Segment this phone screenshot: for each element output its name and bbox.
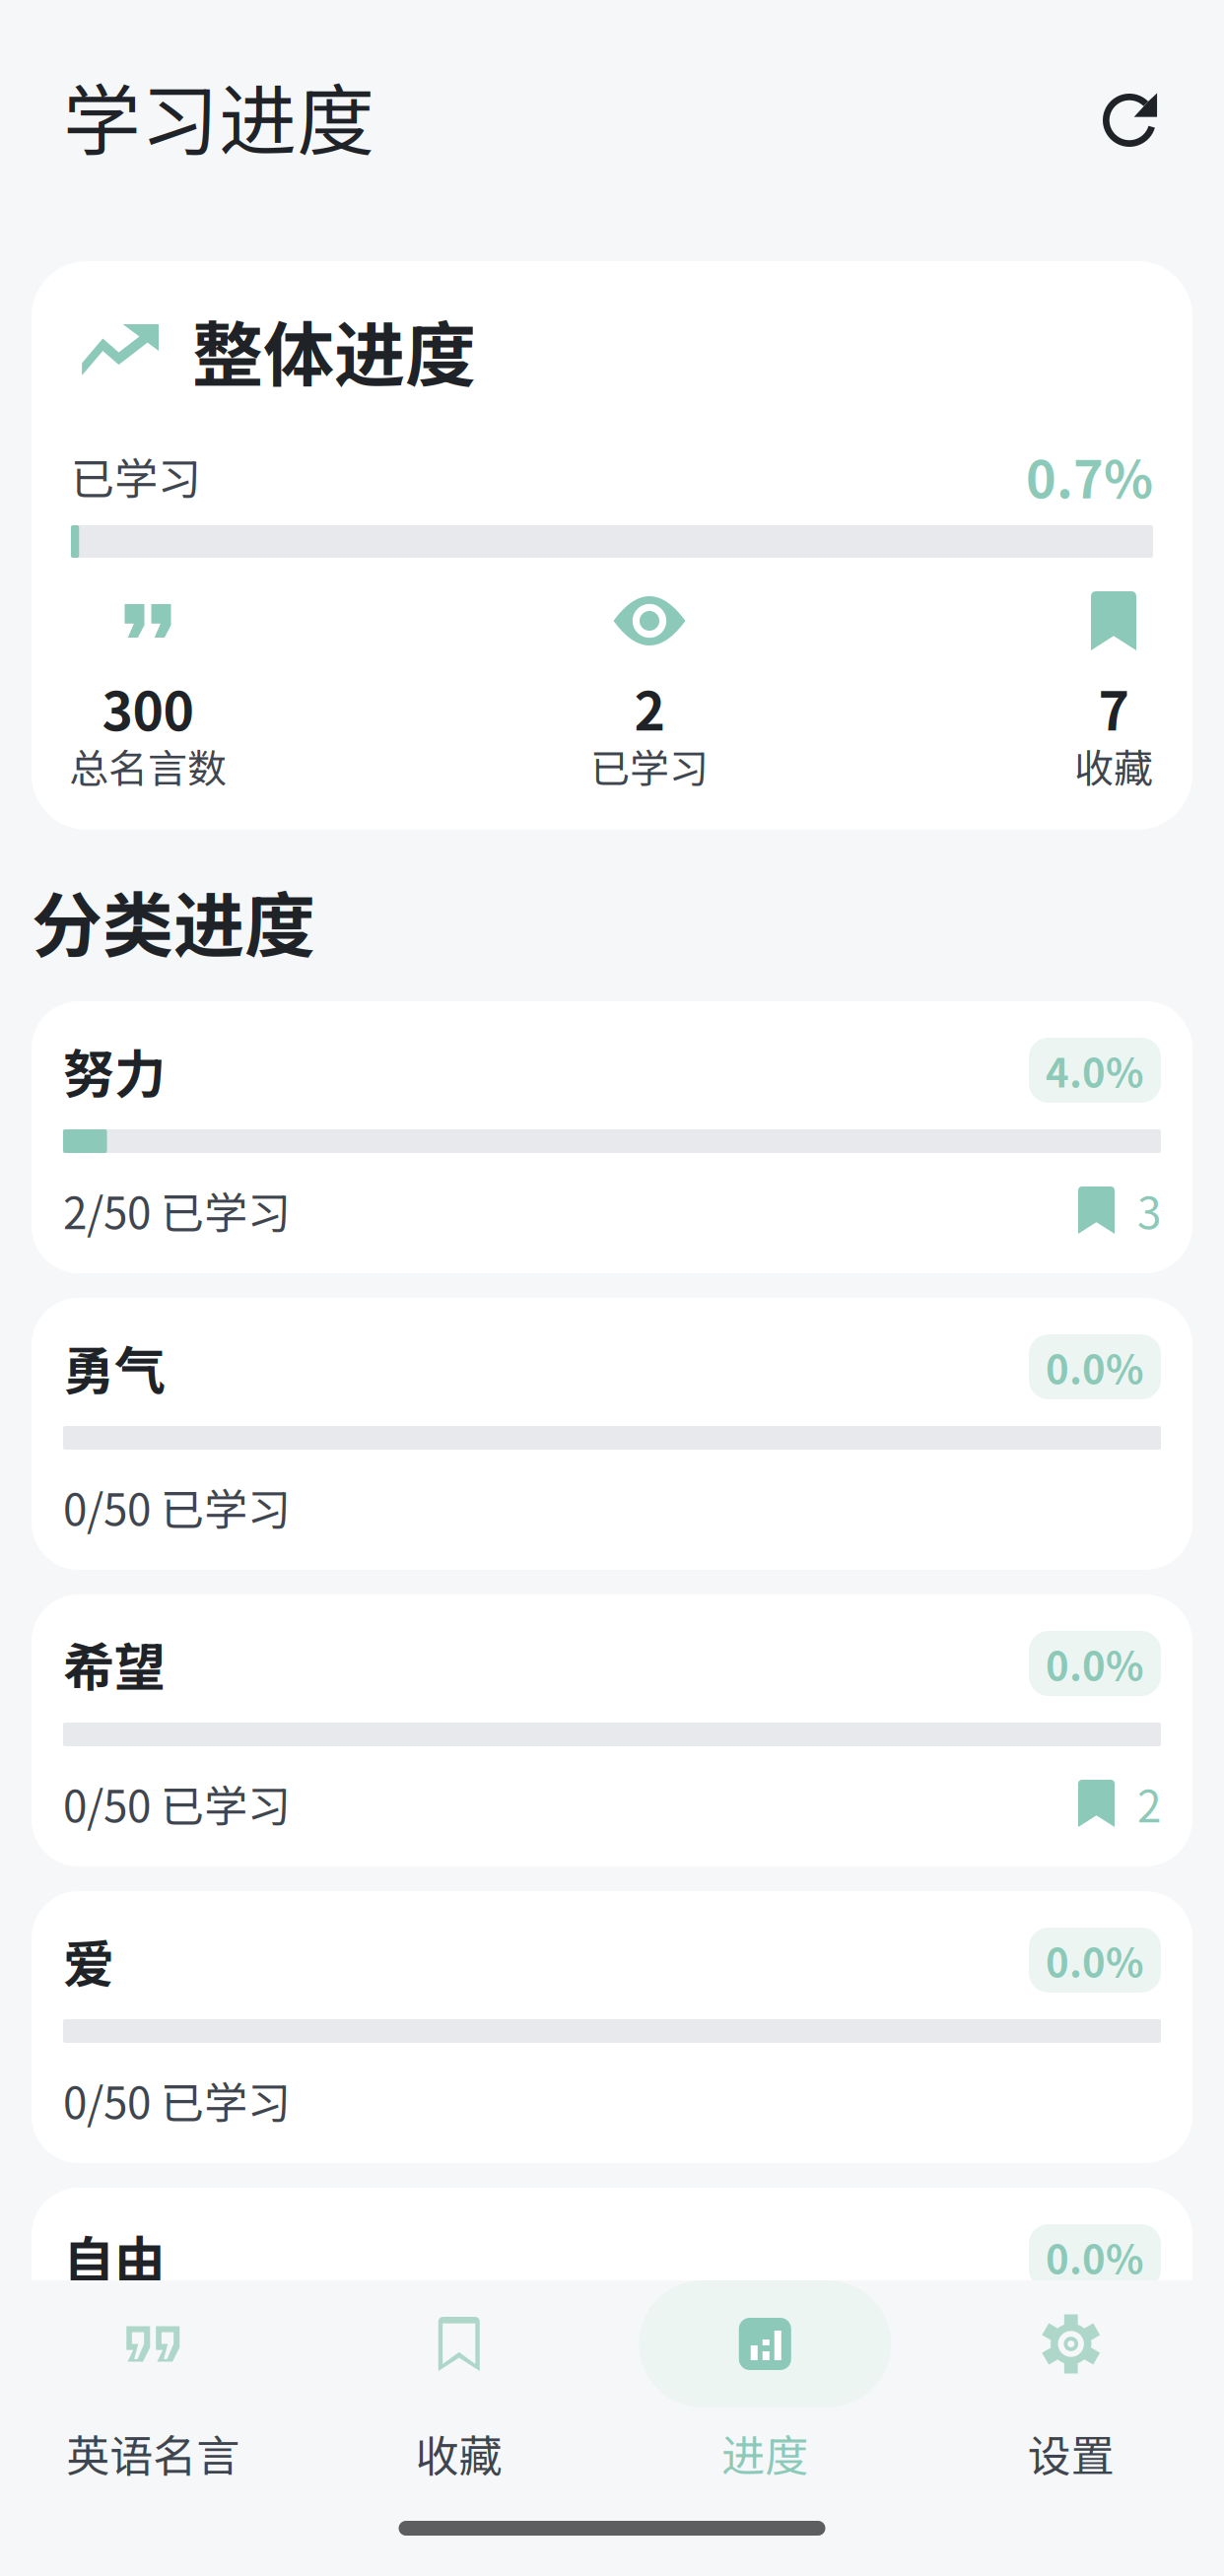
button[interactable]: 收藏	[306, 2280, 612, 2521]
staticText: 2	[634, 670, 665, 746]
button[interactable]: 自由	[32, 2188, 1192, 2460]
staticText: 0.0%	[1046, 2228, 1144, 2285]
staticText: 3	[1137, 1179, 1161, 1241]
staticText: 4.0%	[1046, 1042, 1144, 1099]
staticText: 总名言数	[69, 737, 227, 794]
staticText: 0.0%	[1046, 1338, 1144, 1395]
staticText: 0/50 已学习	[63, 1475, 291, 1538]
button[interactable]: 刷新	[1080, 71, 1179, 169]
staticText: 0.0%	[1046, 1635, 1144, 1692]
staticText: 勇气	[63, 1330, 166, 1404]
staticText: 自由	[63, 2220, 166, 2294]
staticText: 设置	[1028, 2421, 1114, 2484]
staticText: 300	[102, 670, 194, 746]
button[interactable]: 设置	[918, 2280, 1224, 2521]
staticText: 希望	[63, 1626, 166, 1701]
staticText: 进度	[722, 2421, 808, 2484]
staticText: 0/50 已学习	[63, 2069, 291, 2131]
button[interactable]: 努力	[32, 1001, 1192, 1273]
staticText: 0.0%	[1046, 1932, 1144, 1989]
staticText: 收藏	[416, 2421, 502, 2484]
button[interactable]: 希望	[32, 1594, 1192, 1866]
staticText: 爱	[63, 1923, 114, 1997]
button[interactable]: 勇气	[32, 1298, 1192, 1570]
staticText: 2	[1137, 1772, 1161, 1835]
button[interactable]: 英语名言	[0, 2280, 306, 2521]
staticText: 英语名言	[66, 2421, 240, 2484]
staticText: 收藏	[1074, 737, 1153, 794]
staticText: 0.7%	[1026, 439, 1153, 513]
button[interactable]: 爱	[32, 1891, 1192, 2163]
staticText: 学习进度	[63, 59, 374, 171]
staticText: 7	[1098, 670, 1129, 746]
staticText: 2/50 已学习	[63, 1179, 291, 1241]
staticText: 努力	[63, 1033, 166, 1107]
staticText: 已学习	[590, 737, 709, 794]
staticText: 分类进度	[32, 869, 315, 972]
staticText: 已学习	[71, 445, 201, 507]
staticText: 整体进度	[192, 298, 476, 401]
staticText: 0/50 已学习	[63, 1772, 291, 1835]
button[interactable]: 进度	[612, 2280, 918, 2521]
